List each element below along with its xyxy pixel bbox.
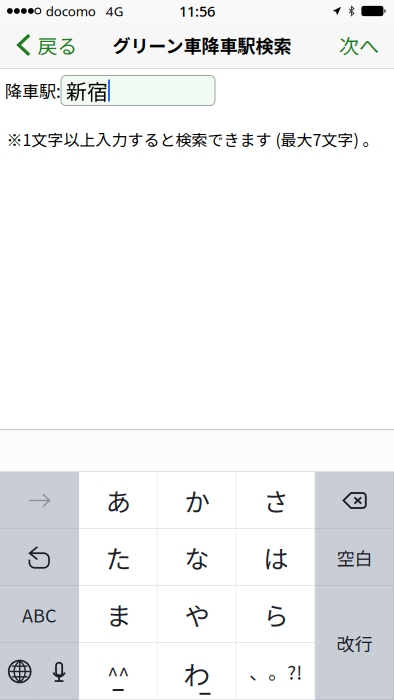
button[interactable]: あ: [79, 472, 158, 529]
staticText: や: [184, 596, 209, 633]
button[interactable]: Switch keyboard: [0, 643, 39, 700]
staticText: わ: [183, 654, 210, 693]
staticText: 空白: [337, 544, 373, 571]
staticText: 次へ: [339, 30, 379, 59]
button[interactable]: 次へ: [331, 22, 394, 68]
staticText: 降車駅:: [5, 78, 61, 103]
staticText: 、。?!: [249, 658, 302, 685]
button[interactable]: ABC: [0, 586, 79, 643]
staticText: ら: [263, 596, 288, 633]
staticText: グリーン車降車駅検索: [112, 32, 291, 58]
button[interactable]: た: [79, 529, 158, 586]
button[interactable]: な: [158, 529, 236, 586]
button[interactable]: 、。?!: [236, 643, 315, 700]
staticText: た: [106, 539, 131, 576]
button[interactable]: は: [236, 529, 315, 586]
button[interactable]: ま: [79, 586, 158, 643]
staticText: か: [184, 482, 209, 519]
staticText: ABC: [22, 601, 57, 628]
staticText: な: [184, 539, 209, 576]
staticText: docomo: [46, 2, 96, 20]
staticText: さ: [263, 482, 288, 519]
staticText: は: [263, 539, 288, 576]
staticText: 新宿: [66, 75, 108, 106]
button[interactable]: さ: [236, 472, 315, 529]
staticText: 4G: [106, 2, 124, 20]
button[interactable]: ^^: [79, 643, 158, 700]
button[interactable]: Undo: [0, 529, 79, 586]
button[interactable]: 空白: [315, 529, 394, 586]
button[interactable]: Delete: [315, 472, 394, 529]
staticText: 改行: [337, 630, 373, 656]
button[interactable]: 新宿: [61, 75, 215, 105]
staticText: ^^: [107, 659, 129, 688]
button[interactable]: Next candidate: [0, 472, 79, 529]
button[interactable]: ら: [236, 586, 315, 643]
staticText: 戻る: [37, 30, 77, 59]
button[interactable]: か: [158, 472, 236, 529]
staticText: 11:56: [179, 1, 215, 21]
button[interactable]: 改行: [315, 586, 394, 700]
staticText: ※1文字以上入力すると検索できます (最大7文字) 。: [6, 127, 378, 151]
staticText: あ: [106, 482, 131, 519]
button[interactable]: や: [158, 586, 236, 643]
button[interactable]: わ: [158, 643, 236, 700]
button[interactable]: 戻る: [0, 22, 85, 68]
button[interactable]: Dictation: [39, 643, 79, 700]
staticText: ま: [106, 596, 131, 633]
